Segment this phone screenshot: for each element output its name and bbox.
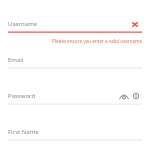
button[interactable]: Password hint (133, 93, 139, 99)
button[interactable]: First Name (8, 126, 142, 142)
button[interactable]: Password (8, 90, 142, 106)
other: Clear username (132, 22, 139, 27)
staticText: Please ensure you enter a valid username (8, 38, 142, 44)
staticText: Username (8, 20, 38, 28)
button[interactable]: Username (8, 18, 142, 34)
button[interactable]: Email (8, 54, 142, 70)
staticText: First Name (8, 128, 39, 136)
staticText: Password (8, 92, 36, 100)
button[interactable]: Show password (119, 93, 129, 99)
staticText: Email (8, 56, 24, 64)
